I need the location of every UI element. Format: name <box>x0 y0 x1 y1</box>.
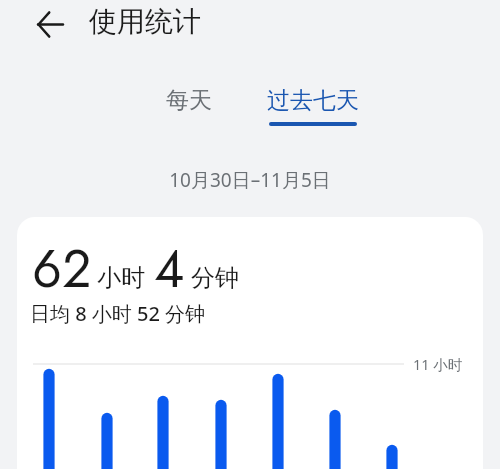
button[interactable]: 10月31日 <box>87 413 127 469</box>
staticText: 日均 8 小时 52 分钟 <box>30 300 206 327</box>
button[interactable]: Back <box>32 6 68 42</box>
staticText: 11 小时 <box>413 354 463 374</box>
staticText: 4 <box>154 231 185 306</box>
button[interactable]: 11月1日 <box>143 396 183 469</box>
button[interactable]: 11月5日 <box>372 445 412 469</box>
staticText: 分钟 <box>191 263 239 293</box>
staticText: 小时 <box>97 263 145 293</box>
button[interactable]: 11月4日 <box>315 410 355 469</box>
button[interactable]: 62 <box>17 217 483 469</box>
button[interactable]: 10月30日 <box>29 369 69 469</box>
button[interactable]: 11月2日 <box>201 400 241 469</box>
button[interactable]: 11月3日 <box>258 374 298 469</box>
button[interactable]: 每天 <box>146 80 232 126</box>
staticText: 每天 <box>166 86 212 115</box>
staticText: 10月30日–11月5日 <box>0 167 500 193</box>
staticText: 62 <box>32 231 92 306</box>
staticText: 使用统计 <box>89 4 201 39</box>
button[interactable]: 过去七天 <box>248 80 377 126</box>
staticText: 过去七天 <box>267 86 359 115</box>
